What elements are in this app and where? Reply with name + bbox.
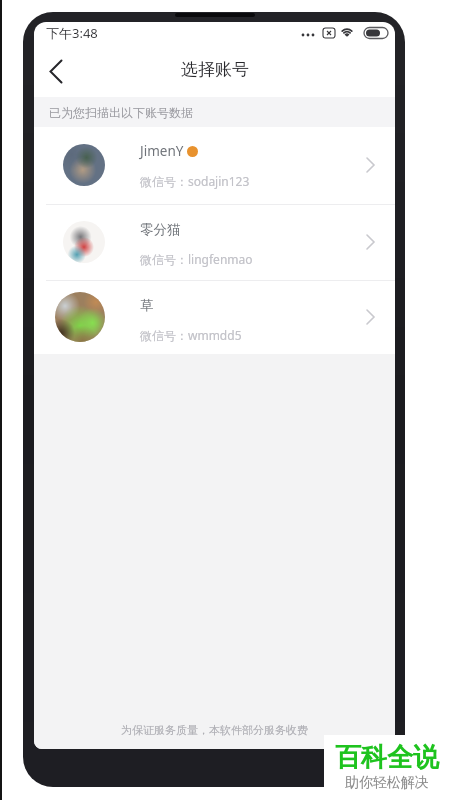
staticText: JimenY: [140, 142, 184, 160]
staticText: 下午3:48: [46, 24, 98, 42]
staticText: 百科全说: [335, 741, 439, 774]
staticText: 零分猫: [140, 221, 181, 238]
button[interactable]: JimenY: [34, 127, 395, 204]
staticText: 选择账号: [181, 59, 249, 80]
button[interactable]: 零分猫: [34, 205, 395, 280]
staticText: 草: [140, 297, 154, 314]
button[interactable]: 草: [34, 281, 395, 354]
staticText: 微信号：sodajin123: [140, 173, 250, 189]
staticText: 已为您扫描出以下账号数据: [49, 105, 193, 120]
staticText: 微信号：lingfenmao: [140, 251, 253, 267]
button[interactable]: [42, 57, 70, 85]
staticText: 微信号：wmmdd5: [140, 327, 242, 343]
staticText: 助你轻松解决: [345, 774, 429, 792]
staticText: 为保证服务质量，本软件部分服务收费: [121, 723, 308, 737]
